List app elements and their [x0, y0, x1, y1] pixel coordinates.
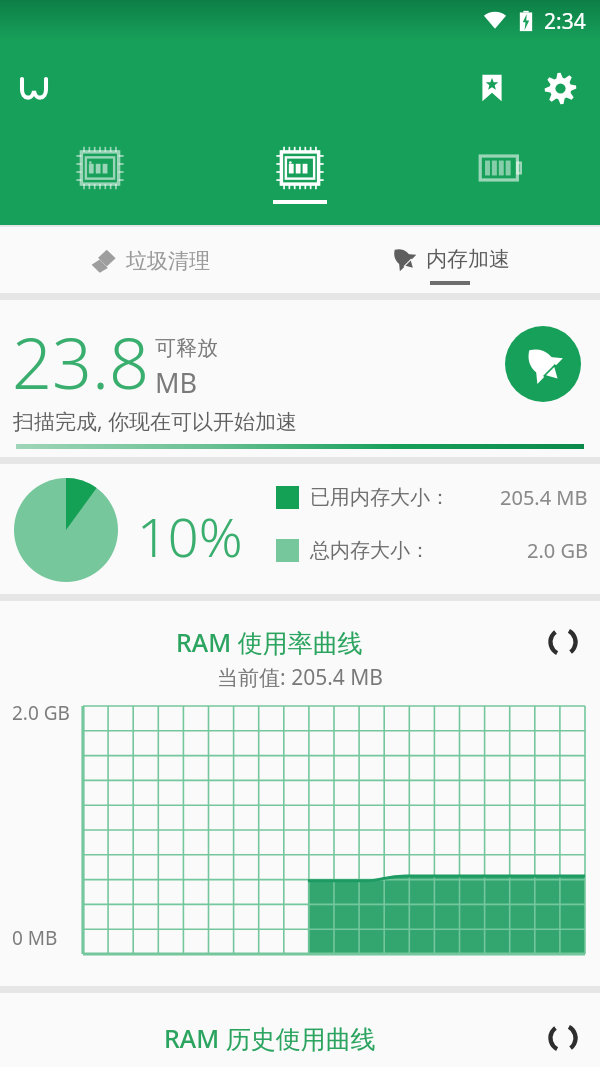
staticText: 总内存大小： [310, 538, 430, 563]
button[interactable]: Boost memory [505, 326, 581, 402]
button[interactable]: 内存加速 [300, 227, 600, 293]
staticText: RAM 使用率曲线 [176, 625, 363, 659]
button[interactable]: RAM [200, 140, 400, 220]
button[interactable]: Refresh [540, 619, 586, 665]
staticText: 0 MB [12, 925, 58, 951]
staticText: MB [155, 364, 198, 401]
button[interactable]: CPU [0, 140, 200, 220]
button[interactable]: Refresh history [540, 1015, 586, 1061]
staticText: 2:34 [544, 7, 586, 36]
button[interactable]: Settings [532, 60, 588, 116]
staticText: 当前值: 205.4 MB [0, 663, 600, 692]
staticText: 扫描完成, 你现在可以开始加速 [13, 407, 298, 436]
button[interactable]: Bookmark [464, 60, 520, 116]
staticText: 内存加速 [426, 246, 510, 272]
staticText: 垃圾清理 [126, 248, 210, 274]
button[interactable]: Menu [6, 60, 62, 116]
staticText: 已用内存大小： [310, 485, 450, 510]
staticText: 205.4 MB [500, 484, 588, 511]
button[interactable]: 垃圾清理 [0, 227, 300, 293]
staticText: 23.8 [12, 314, 149, 409]
staticText: 10% [137, 499, 243, 573]
staticText: 2.0 GB [527, 537, 588, 564]
button[interactable]: Battery [400, 140, 600, 220]
staticText: RAM 历史使用曲线 [164, 1021, 376, 1055]
staticText: 2.0 GB [12, 700, 70, 726]
staticText: 可释放 [155, 335, 218, 361]
